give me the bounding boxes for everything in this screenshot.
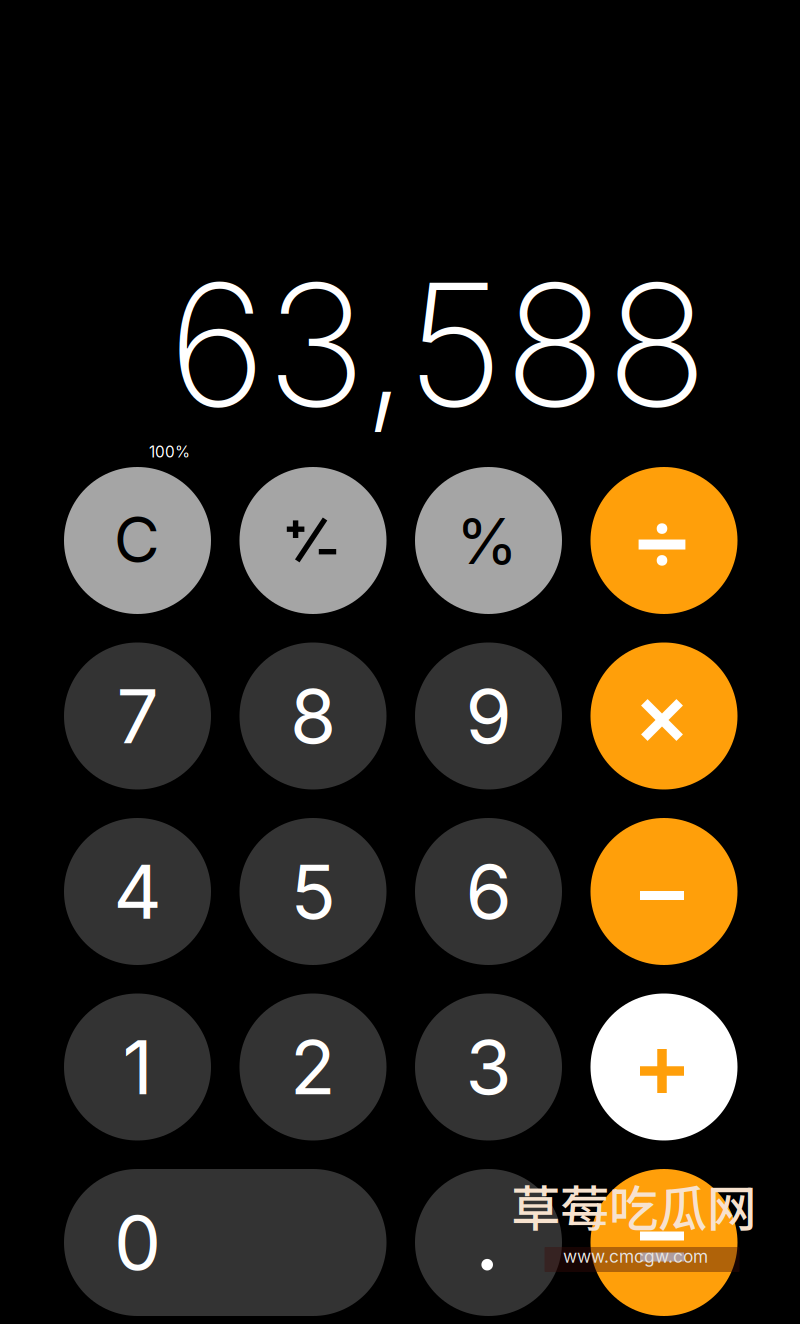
button[interactable]: Multiply [590,642,737,789]
button[interactable]: 3 [415,993,562,1140]
button[interactable]: Plus [590,993,737,1140]
button[interactable]: Plus Minus [239,467,386,614]
staticText: 1 [122,1022,152,1112]
button[interactable]: Equals [590,1169,737,1316]
button[interactable]: 8 [239,642,386,789]
button[interactable]: 2 [239,993,386,1140]
button[interactable]: Minus [590,818,737,965]
button[interactable]: 0 [64,1169,386,1316]
staticText: 7 [116,671,158,761]
button[interactable]: 4 [64,818,211,965]
button[interactable]: 7 [64,642,211,789]
staticText: 5 [290,846,335,937]
button[interactable]: % [415,467,562,614]
button[interactable]: C [64,467,211,614]
button[interactable]: 6 [415,818,562,965]
staticText: 63,588 [168,242,708,446]
staticText: 8 [290,671,336,761]
staticText: 4 [113,846,161,937]
button[interactable]: 9 [415,642,562,789]
staticText: 9 [465,671,511,761]
staticText: 100% [149,443,190,461]
staticText: C [114,501,160,578]
staticText: 0 [114,1197,161,1288]
staticText: www.cmcgw.com [563,1246,708,1267]
staticText: 2 [290,1022,336,1112]
staticText: 3 [465,1022,511,1112]
staticText: 草莓吃瓜网 [511,1169,756,1241]
staticText: % [456,503,518,579]
button[interactable]: Decimal point [415,1169,562,1316]
button[interactable]: 1 [64,993,211,1140]
button[interactable]: Divide [590,467,737,614]
staticText: 6 [465,846,511,937]
button[interactable]: 5 [239,818,386,965]
